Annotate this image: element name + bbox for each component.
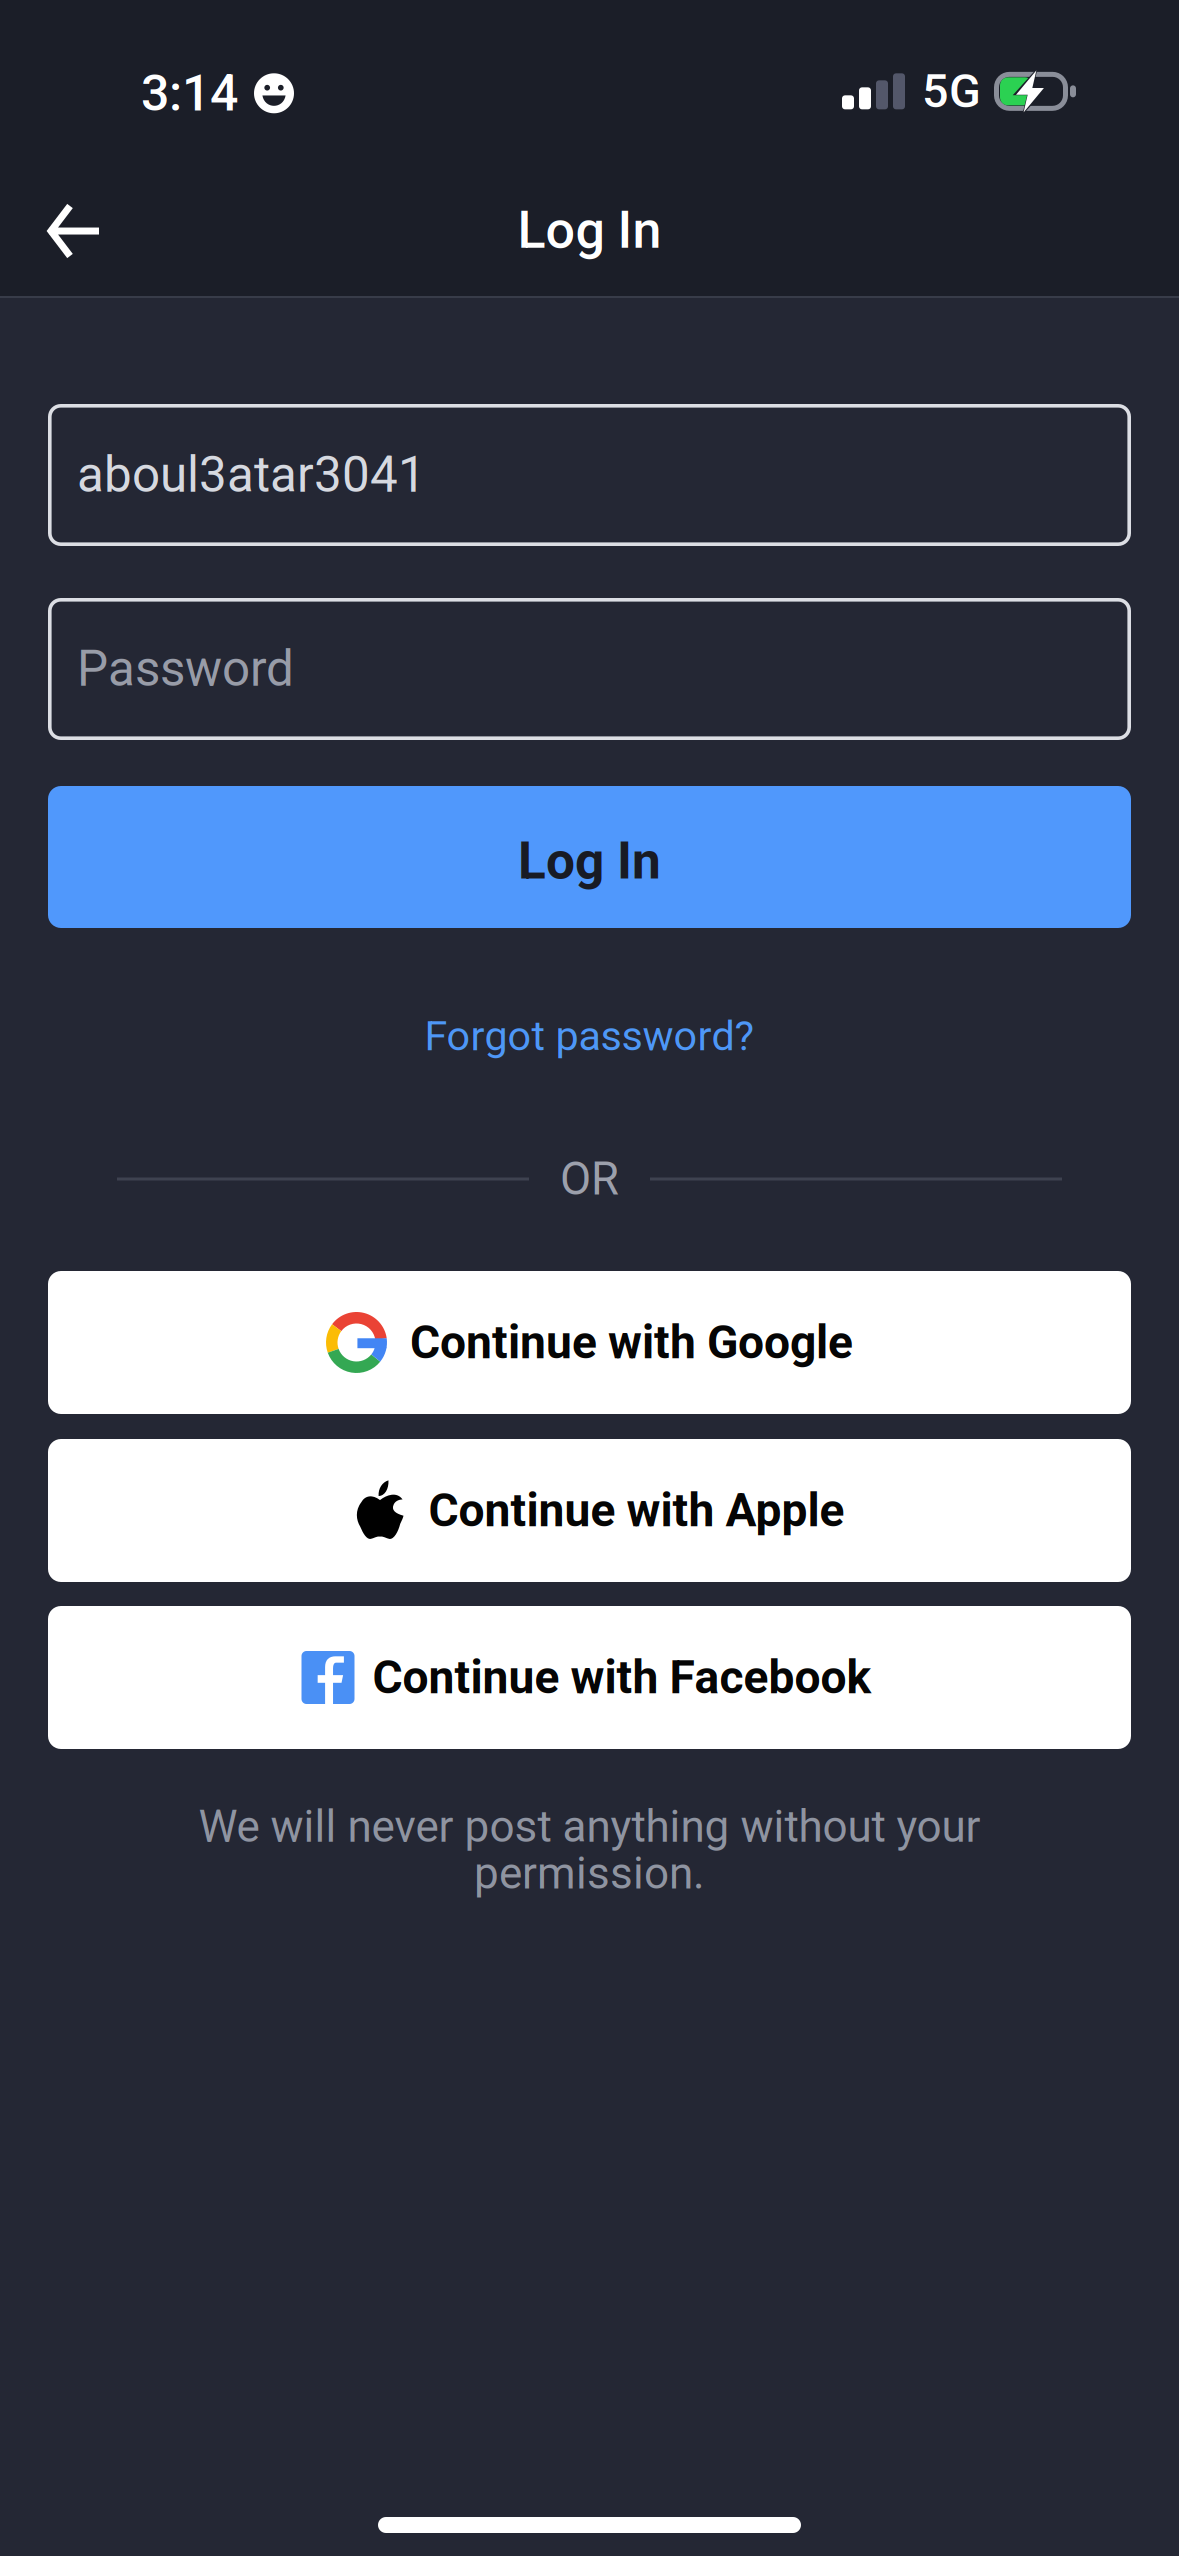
staticText: We will never post anything without your <box>198 1801 980 1853</box>
staticText: Password <box>77 640 294 698</box>
staticText: Continue with Google <box>410 1315 853 1370</box>
button[interactable]: Forgot password? <box>48 1010 1131 1062</box>
button[interactable]: Continue with Apple <box>48 1439 1131 1582</box>
staticText: Forgot password? <box>424 1012 754 1060</box>
staticText: 5G <box>922 64 981 119</box>
staticText: Continue with Apple <box>428 1483 844 1538</box>
staticText: Log In <box>517 199 661 260</box>
staticText: Continue with Facebook <box>372 1650 871 1705</box>
staticText: aboul3atar3041 <box>77 446 426 504</box>
button[interactable]: Log In <box>48 786 1131 928</box>
button[interactable]: Continue with Google <box>48 1271 1131 1414</box>
staticText: OR <box>560 1152 619 1205</box>
staticText: 3:14 <box>141 64 238 123</box>
staticText: permission. <box>474 1848 705 1899</box>
button[interactable]: Continue with Facebook <box>48 1606 1131 1749</box>
button[interactable]: Back <box>0 160 144 296</box>
staticText: Log In <box>518 831 661 891</box>
